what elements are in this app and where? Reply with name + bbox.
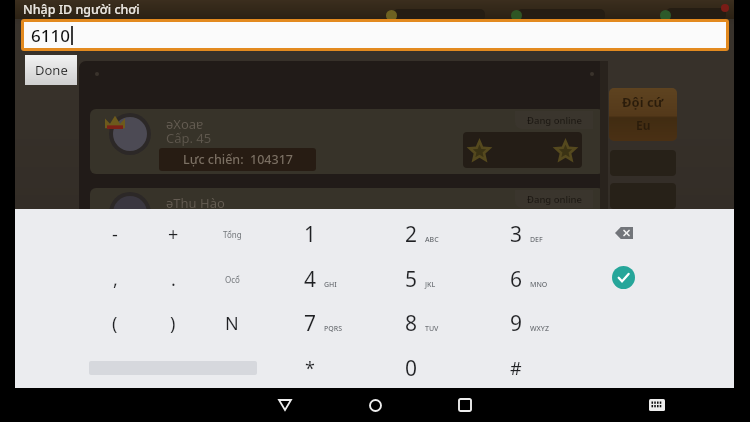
staticText: ABC <box>425 235 439 245</box>
button[interactable]: , <box>85 259 145 299</box>
button[interactable]: 4 <box>280 259 340 299</box>
staticText: ( <box>112 311 118 336</box>
staticText: 6110 <box>31 24 70 47</box>
button[interactable]: 8 <box>381 303 441 343</box>
staticText: PQRS <box>324 324 343 334</box>
staticText: 4 <box>304 265 317 294</box>
staticText: Done <box>35 61 68 79</box>
staticText: 8 <box>405 309 418 338</box>
staticText: 0 <box>405 354 418 383</box>
staticText: 9 <box>510 309 523 338</box>
button[interactable]: - <box>85 214 145 254</box>
staticText: 1 <box>304 220 317 249</box>
staticText: , <box>113 267 118 292</box>
button[interactable]: 0 <box>381 348 441 388</box>
staticText: . <box>171 267 176 292</box>
staticText: GHI <box>324 280 337 290</box>
staticText: ) <box>170 311 176 336</box>
button[interactable]: ǝThu Hào <box>90 188 604 253</box>
staticText: Ocổ <box>225 274 240 285</box>
button[interactable]: Đội cứ <box>609 88 677 141</box>
button[interactable]: 5 <box>381 259 441 299</box>
button[interactable]: 7 <box>280 303 340 343</box>
staticText: 2 <box>405 220 418 249</box>
button[interactable]: 6110 <box>24 22 726 48</box>
staticText: Nhập ID người chơi <box>23 1 140 18</box>
button[interactable]: 6 <box>486 259 546 299</box>
staticText: Eu <box>636 117 651 133</box>
staticText: 6 <box>510 265 523 294</box>
staticText: ǝXoaɐ <box>166 115 204 133</box>
staticText: Đội cứ <box>622 93 664 111</box>
button[interactable]: ) <box>143 303 203 343</box>
staticText: - <box>112 222 118 247</box>
staticText: WXYZ <box>530 324 549 334</box>
button[interactable]: 3 <box>486 214 546 254</box>
button[interactable]: 1 <box>280 214 340 254</box>
button[interactable]: 2 <box>381 214 441 254</box>
button[interactable]: * <box>280 348 340 388</box>
staticText: + <box>168 222 179 247</box>
button[interactable]: Tổng <box>202 214 262 254</box>
button[interactable]: 9 <box>486 303 546 343</box>
staticText: * <box>305 356 315 381</box>
staticText: TUV <box>425 324 439 334</box>
button[interactable]: # <box>486 348 546 388</box>
button[interactable]: Done <box>25 55 77 85</box>
staticText: Tổng <box>223 229 242 240</box>
button[interactable]: N <box>202 303 262 343</box>
staticText: JKL <box>425 280 436 290</box>
staticText: Đang online <box>527 114 582 127</box>
staticText: DEF <box>530 235 543 245</box>
staticText: # <box>510 356 522 381</box>
button[interactable]: Home <box>351 389 399 421</box>
staticText: MNO <box>530 280 548 290</box>
staticText: Đang online <box>527 193 582 206</box>
button[interactable]: ǝXoaɐ <box>90 109 604 174</box>
staticText: 3 <box>510 220 523 249</box>
staticText: 7 <box>304 309 317 338</box>
button[interactable]: ( <box>85 303 145 343</box>
button[interactable]: . <box>143 259 203 299</box>
staticText: 5 <box>405 265 418 294</box>
staticText: ǝThu Hào <box>166 194 225 212</box>
button[interactable]: Backspace <box>596 214 652 251</box>
button[interactable]: Ocổ <box>202 259 262 299</box>
staticText: N <box>225 311 239 336</box>
staticText: Lực chiến: 104317 <box>183 151 293 168</box>
staticText: Cấp. 45 <box>166 129 212 147</box>
button[interactable]: Hide keyboard <box>261 389 309 421</box>
button[interactable]: Enter <box>612 266 635 289</box>
button[interactable]: Switch keyboard <box>637 391 677 419</box>
button[interactable]: + <box>143 214 203 254</box>
button[interactable]: Recent apps <box>441 389 489 421</box>
